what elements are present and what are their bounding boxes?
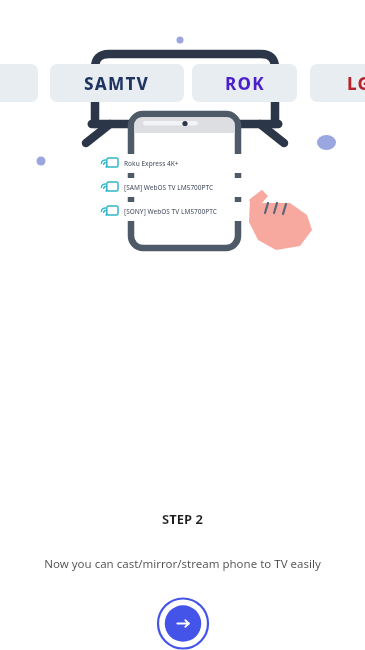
button[interactable]: LGT: [310, 64, 365, 102]
button[interactable]: ROK: [192, 64, 297, 102]
button[interactable]: Next: [156, 597, 210, 650]
staticText: Roku Express 4K+: [124, 159, 179, 168]
button[interactable]: [SAM] WebOS TV LM5700PTC: [99, 178, 266, 197]
button[interactable]: [SONY] WebOS TV LM5700PTC: [99, 202, 266, 221]
staticText: Now you can cast/mirror/stream phone to …: [16, 556, 349, 572]
staticText: STEP 2: [162, 510, 203, 528]
staticText: ROK: [225, 72, 265, 95]
staticText: [SAM] WebOS TV LM5700PTC: [124, 183, 214, 192]
button[interactable]: SAMTV: [50, 64, 184, 102]
staticText: [SONY] WebOS TV LM5700PTC: [124, 207, 217, 216]
staticText: LGT: [347, 72, 365, 95]
button[interactable]: Roku Express 4K+: [99, 154, 266, 173]
staticText: SAMTV: [84, 72, 150, 95]
